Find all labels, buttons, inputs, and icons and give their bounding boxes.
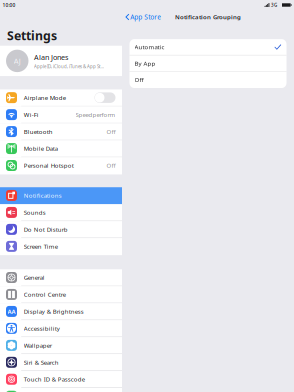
staticText: Control Centre	[24, 290, 66, 298]
button[interactable]: AA	[0, 303, 122, 320]
staticText: App Store	[130, 13, 161, 21]
staticText: Wallpaper	[24, 341, 52, 349]
staticText: Accessibility	[24, 324, 60, 332]
staticText: Off	[106, 161, 115, 169]
staticText: Display & Brightness	[24, 307, 84, 315]
staticText: Siri & Search	[24, 358, 59, 366]
button[interactable]: Wi-Fi	[0, 106, 122, 123]
button[interactable]: By App	[129, 55, 286, 72]
staticText: Notification Grouping	[175, 13, 241, 21]
staticText: Automatic	[134, 43, 164, 51]
staticText: 10:00	[2, 2, 15, 8]
staticText: Bluetooth	[24, 128, 53, 136]
staticText: Mobile Data	[24, 145, 58, 153]
button[interactable]: Siri & Search	[0, 354, 122, 371]
button[interactable]: Touch ID & Passcode	[0, 371, 122, 388]
staticText: Settings	[7, 27, 57, 44]
button[interactable]: Do Not Disturb	[0, 221, 122, 238]
staticText: Sounds	[24, 208, 46, 216]
button[interactable]: Wallpaper	[0, 337, 122, 354]
staticText: Do Not Disturb	[24, 225, 68, 233]
staticText: Alan Jones	[34, 52, 68, 62]
button[interactable]: Control Centre	[0, 286, 122, 303]
staticText: Apple ID, iCloud, iTunes & App St...	[34, 63, 104, 69]
staticText: AA	[7, 307, 15, 315]
button[interactable]: Battery	[0, 388, 122, 392]
staticText: Wi-Fi	[24, 111, 39, 119]
staticText: Personal Hotspot	[24, 161, 74, 169]
button[interactable]: Personal Hotspot	[0, 157, 122, 174]
button[interactable]: Automatic	[129, 39, 286, 55]
button[interactable]: Accessibility	[0, 320, 122, 337]
staticText: Notifications	[24, 191, 62, 199]
staticText: General	[24, 273, 45, 281]
button[interactable]: App Store	[122, 8, 161, 26]
button[interactable]: Off	[129, 72, 286, 88]
button[interactable]: Airplane Mode	[0, 89, 122, 106]
button[interactable]: Mobile Data	[0, 140, 122, 157]
staticText: Touch ID & Passcode	[24, 375, 85, 383]
button[interactable]: Bluetooth	[0, 123, 122, 140]
staticText: Off	[134, 76, 143, 84]
button[interactable]: Notifications	[0, 187, 122, 204]
button[interactable]: AJ	[0, 46, 122, 76]
staticText: Speedperform	[75, 111, 115, 119]
staticText: Airplane Mode	[24, 94, 66, 102]
staticText: Off	[106, 128, 115, 136]
button[interactable]: Sounds	[0, 204, 122, 221]
staticText: 3G	[271, 2, 277, 8]
button[interactable]: Screen Time	[0, 238, 122, 255]
staticText: By App	[134, 59, 155, 67]
staticText: AJ	[14, 56, 21, 66]
button[interactable]: General	[0, 269, 122, 286]
staticText: Screen Time	[24, 242, 58, 250]
